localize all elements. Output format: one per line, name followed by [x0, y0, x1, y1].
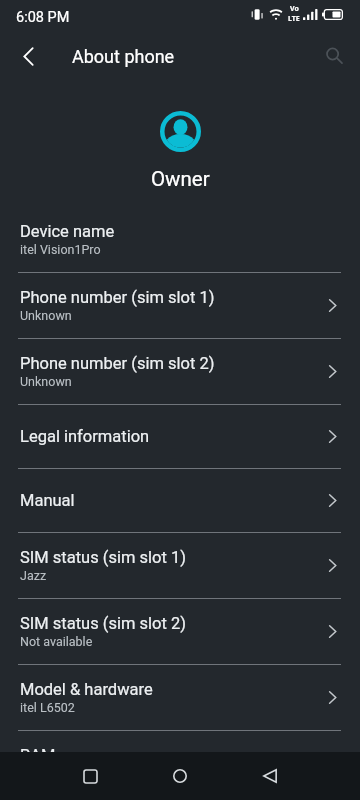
staticText: Legal information: [20, 427, 150, 446]
staticText: Phone number (sim slot 1): [20, 288, 215, 307]
button[interactable]: Back: [6, 34, 50, 78]
staticText: itel Vision1Pro: [20, 242, 101, 257]
button[interactable]: Recent apps: [62, 752, 118, 800]
staticText: About phone: [72, 46, 175, 67]
button[interactable]: Search: [312, 34, 356, 78]
staticText: 6:08 PM: [16, 9, 70, 26]
button[interactable]: Phone number (sim slot 1): [0, 273, 360, 339]
button[interactable]: Home: [152, 752, 208, 800]
button[interactable]: Device name: [0, 207, 360, 273]
button[interactable]: SIM status (sim slot 2): [0, 599, 360, 665]
staticText: Device name: [20, 222, 115, 241]
staticText: SIM status (sim slot 2): [20, 614, 186, 633]
staticText: Jazz: [20, 568, 47, 583]
staticText: LTE: [288, 14, 300, 24]
button[interactable]: Back: [242, 752, 298, 800]
button[interactable]: Legal information: [0, 405, 360, 469]
staticText: Not available: [20, 634, 93, 649]
button[interactable]: RAM: [0, 731, 360, 797]
button[interactable]: Phone number (sim slot 2): [0, 339, 360, 405]
staticText: Phone number (sim slot 2): [20, 354, 215, 373]
staticText: SIM status (sim slot 1): [20, 548, 186, 567]
staticText: Owner: [151, 167, 210, 191]
staticText: Manual: [20, 491, 75, 510]
staticText: RAM: [20, 746, 56, 765]
button[interactable]: Model & hardware: [0, 665, 360, 731]
button[interactable]: Manual: [0, 469, 360, 533]
staticText: itel L6502: [20, 700, 75, 715]
staticText: Unknown: [20, 374, 72, 389]
staticText: Unknown: [20, 308, 72, 323]
staticText: Vo: [290, 4, 299, 14]
staticText: Model & hardware: [20, 680, 153, 699]
button[interactable]: SIM status (sim slot 1): [0, 533, 360, 599]
